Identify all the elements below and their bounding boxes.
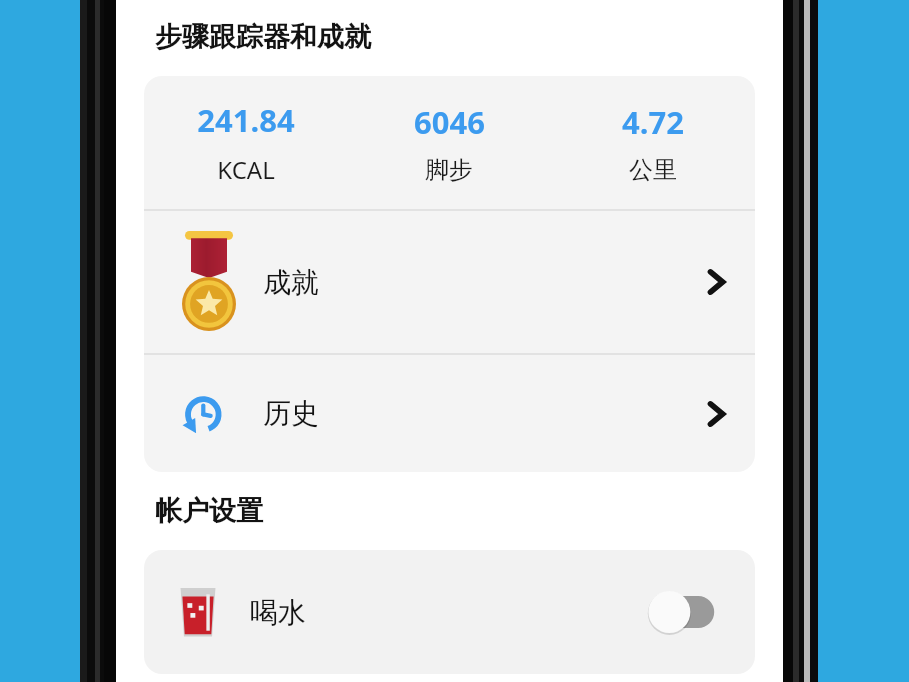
staticText: 241.84	[197, 99, 295, 141]
button[interactable]: 历史	[144, 355, 755, 472]
staticText: 历史	[263, 396, 319, 431]
staticText: 公里	[629, 155, 677, 185]
button[interactable]: 喝水 toggle	[647, 591, 717, 633]
button[interactable]: 成就	[144, 211, 755, 353]
staticText: 喝水	[250, 595, 306, 630]
staticText: 帐户设置	[155, 494, 263, 528]
staticText: 成就	[263, 265, 319, 300]
staticText: 步骤跟踪器和成就	[155, 20, 371, 54]
button[interactable]: 喝水	[144, 550, 755, 674]
staticText: 4.72	[622, 101, 684, 143]
staticText: KCAL	[217, 153, 275, 186]
staticText: 脚步	[425, 155, 473, 185]
staticText: 6046	[414, 101, 485, 143]
